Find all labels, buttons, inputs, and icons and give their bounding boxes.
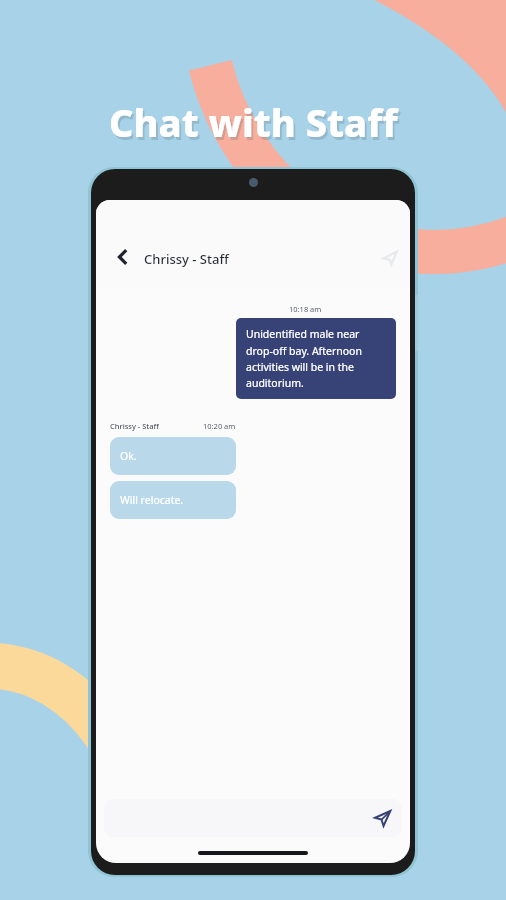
- button[interactable]: Will relocate.: [110, 481, 236, 519]
- staticText: 10:18 am: [289, 304, 322, 314]
- button[interactable]: Unidentified male near drop-off bay. Aft…: [236, 318, 396, 399]
- staticText: Will relocate.: [120, 493, 184, 507]
- button[interactable]: Send: [104, 799, 402, 837]
- button[interactable]: More: [374, 242, 406, 274]
- button[interactable]: Send: [368, 804, 396, 832]
- staticText: Unidentified male near drop-off bay. Aft…: [246, 327, 386, 390]
- staticText: Ok.: [120, 449, 137, 463]
- button[interactable]: Ok.: [110, 437, 236, 475]
- staticText: Chrissy - Staff: [110, 421, 159, 431]
- staticText: Chat with Staff: [109, 96, 398, 148]
- staticText: Chrissy - Staff: [144, 250, 229, 268]
- staticText: 10:20 am: [203, 421, 236, 431]
- button[interactable]: Back: [106, 240, 140, 274]
- staticText: Chat with Staff: [111, 99, 400, 151]
